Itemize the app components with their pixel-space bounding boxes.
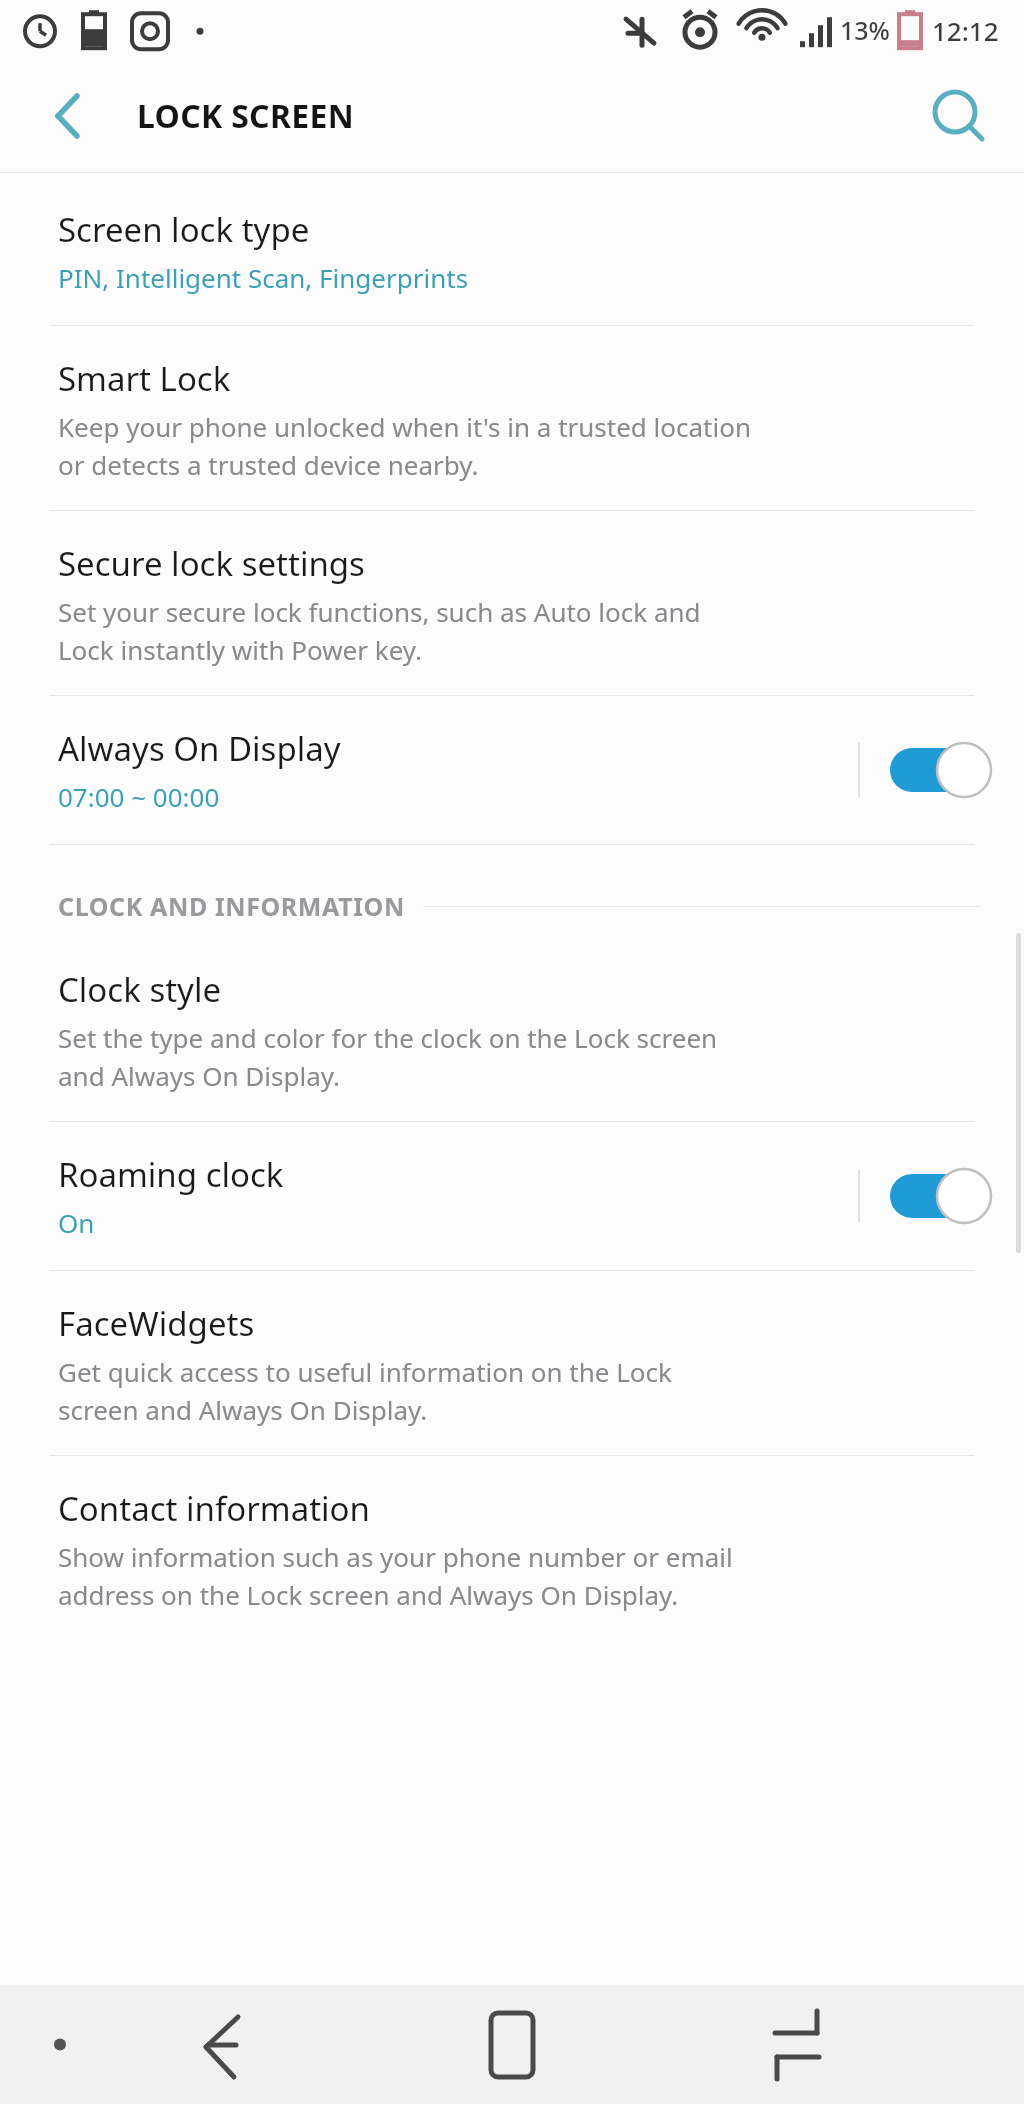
staticText: Set your secure lock functions, such as … [58, 594, 701, 667]
button[interactable]: Screen lock type [0, 173, 1024, 325]
staticText: FaceWidgets [58, 1301, 255, 1346]
staticText: Show information such as your phone numb… [58, 1539, 733, 1612]
staticText: Screen lock type [58, 207, 310, 252]
staticText: 12:12 [932, 13, 999, 48]
button[interactable]: Contact information [0, 1456, 1024, 1640]
staticText: Always On Display [58, 726, 341, 771]
button[interactable]: Secure lock settings [0, 511, 1024, 695]
staticText: LOCK SCREEN [137, 94, 354, 138]
staticText: Contact information [58, 1486, 370, 1531]
staticText: CLOCK AND INFORMATION [58, 889, 405, 923]
button[interactable]: Roaming clock toggle [886, 1164, 994, 1228]
staticText: 07:00 ~ 00:00 [58, 779, 220, 814]
staticText: Keep your phone unlocked when it's in a … [58, 409, 751, 482]
button[interactable]: Smart Lock [0, 326, 1024, 510]
staticText: 13% [840, 13, 890, 47]
staticText: Get quick access to useful information o… [58, 1354, 672, 1427]
staticText: Clock style [58, 967, 222, 1012]
button[interactable]: FaceWidgets [0, 1271, 1024, 1455]
button[interactable]: Search [910, 68, 1006, 164]
staticText: PIN, Intelligent Scan, Fingerprints [58, 260, 469, 295]
button[interactable]: Home [457, 1990, 567, 2100]
button[interactable]: Always On Display [0, 696, 1024, 844]
staticText: On [58, 1205, 95, 1240]
staticText: Smart Lock [58, 356, 231, 401]
staticText: Secure lock settings [58, 541, 365, 586]
button[interactable]: Always On Display toggle [886, 738, 994, 802]
staticText: Set the type and color for the clock on … [58, 1020, 718, 1093]
staticText: Roaming clock [58, 1152, 284, 1197]
button[interactable]: Back [20, 68, 116, 164]
button[interactable]: Recents [742, 1990, 852, 2100]
button[interactable]: Roaming clock [0, 1122, 1024, 1270]
button[interactable]: Back [165, 1990, 275, 2100]
button[interactable]: Clock style [0, 945, 1024, 1121]
